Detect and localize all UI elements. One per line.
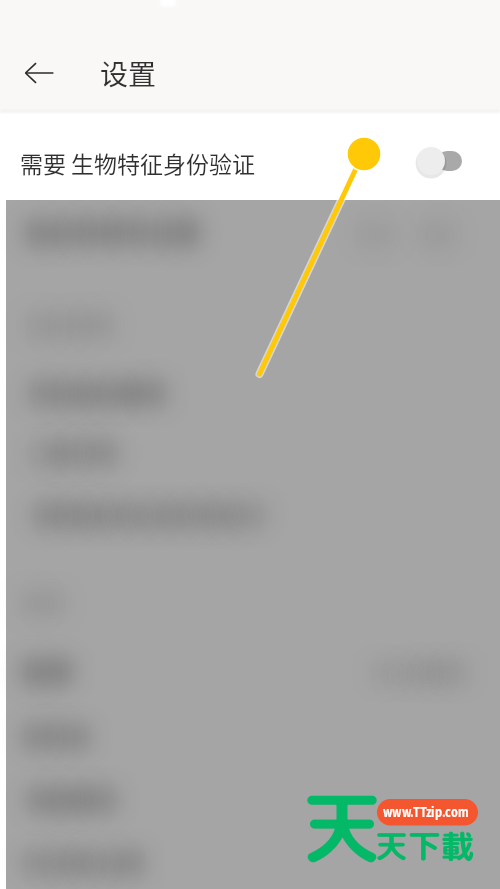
button[interactable]: [0, 111, 500, 200]
button[interactable]: Back: [12, 46, 66, 100]
